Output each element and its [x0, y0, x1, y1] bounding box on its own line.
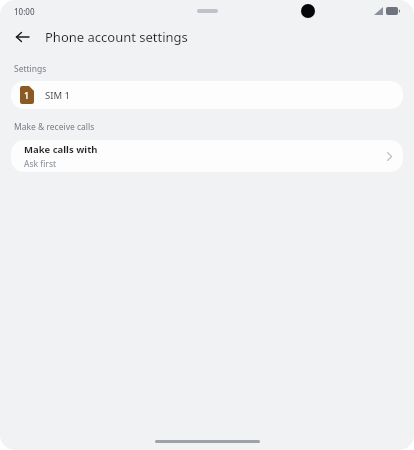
staticText: Make & receive calls	[14, 121, 95, 133]
button[interactable]: 1	[11, 81, 403, 109]
staticText: 1	[24, 89, 30, 101]
staticText: Make calls with	[24, 143, 98, 156]
button[interactable]: Back	[8, 23, 36, 51]
staticText: Ask first	[24, 158, 57, 170]
staticText: SIM 1	[45, 89, 70, 102]
button[interactable]: Make calls with	[11, 140, 403, 172]
staticText: 10:00	[14, 6, 35, 17]
staticText: Phone account settings	[45, 28, 188, 46]
staticText: Settings	[14, 63, 47, 75]
